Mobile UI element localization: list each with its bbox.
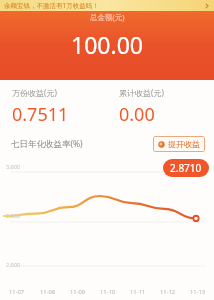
staticText: 11-12 [160,288,176,296]
staticText: 2.500 [6,212,21,219]
staticText: 11-13 [190,288,206,296]
staticText: 总金额(元) [90,12,125,22]
staticText: 2.8710 [170,161,202,175]
button[interactable]: 万份收益(元) [0,80,107,130]
staticText: 提开收益 [168,139,200,149]
staticText: 3.000 [6,163,21,170]
button[interactable]: 2.8710 [163,159,209,177]
staticText: 11-10 [100,288,116,296]
staticText: 万份收益(元) [12,87,57,98]
staticText: 11-09 [70,288,86,296]
staticText: 累计收益(元) [119,87,164,98]
staticText: 11-11 [130,288,146,296]
staticText: 11-08 [40,288,56,296]
staticText: 2.000 [6,261,21,268]
staticText: 0.00 [119,102,155,127]
staticText: 0.7511 [12,102,69,127]
staticText: 100.00 [71,29,143,60]
staticText: 11-07 [9,288,25,296]
button[interactable]: Coin [153,136,205,152]
other: Coin [158,141,165,148]
button[interactable]: 余额宝钱，不激活有1万收益吗！ [0,0,214,11]
staticText: 七日年化收益率(%) [11,138,83,150]
other: More [204,3,210,9]
staticText: 余额宝钱，不激活有1万收益吗！ [4,1,204,10]
button[interactable]: 累计收益(元) [107,80,214,130]
